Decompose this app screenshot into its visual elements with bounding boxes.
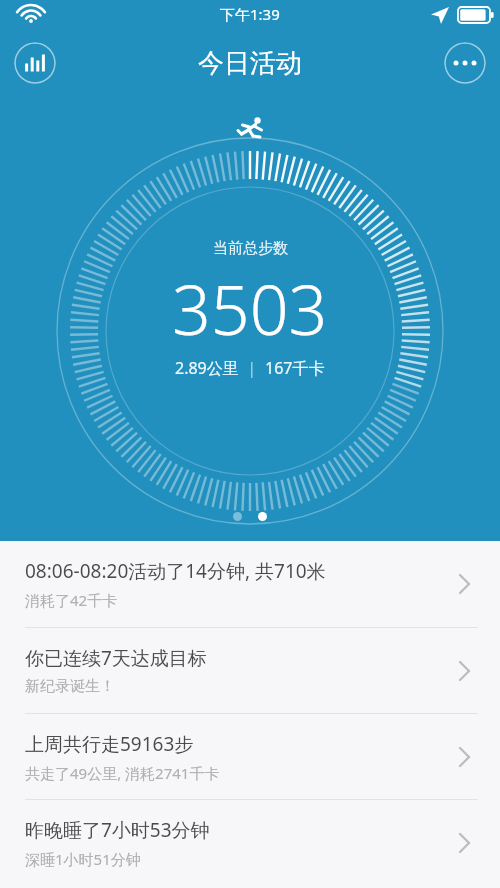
staticText: 新纪录诞生！ bbox=[25, 677, 115, 696]
staticText: 消耗了42千卡 bbox=[25, 590, 118, 610]
staticText: 上周共行走59163步 bbox=[25, 731, 194, 757]
staticText: 今日活动 bbox=[198, 47, 302, 80]
staticText: 08:06-08:20活动了14分钟, 共710米 bbox=[25, 558, 326, 584]
button[interactable]: 昨晚睡了7小时53分钟 bbox=[0, 800, 500, 885]
staticText: 深睡1小时51分钟 bbox=[25, 849, 141, 869]
button[interactable]: 上周共行走59163步 bbox=[0, 714, 500, 799]
staticText: 当前总步数 bbox=[213, 239, 288, 258]
button[interactable]: Page 2 bbox=[258, 512, 267, 521]
staticText: 2.89公里 bbox=[175, 357, 239, 379]
staticText: 下午1:39 bbox=[220, 4, 280, 24]
button[interactable]: 你已连续7天达成目标 bbox=[0, 628, 500, 713]
staticText: | bbox=[239, 357, 265, 379]
button[interactable]: Page 1 bbox=[233, 512, 242, 521]
button[interactable]: Statistics bbox=[14, 42, 56, 84]
staticText: 你已连续7天达成目标 bbox=[25, 645, 207, 671]
button[interactable]: 08:06-08:20活动了14分钟, 共710米 bbox=[0, 541, 500, 627]
button[interactable]: More options bbox=[444, 42, 486, 84]
staticText: 昨晚睡了7小时53分钟 bbox=[25, 817, 210, 843]
staticText: 167千卡 bbox=[265, 357, 325, 379]
staticText: 共走了49公里, 消耗2741千卡 bbox=[25, 763, 220, 783]
staticText: 3503 bbox=[172, 262, 328, 355]
